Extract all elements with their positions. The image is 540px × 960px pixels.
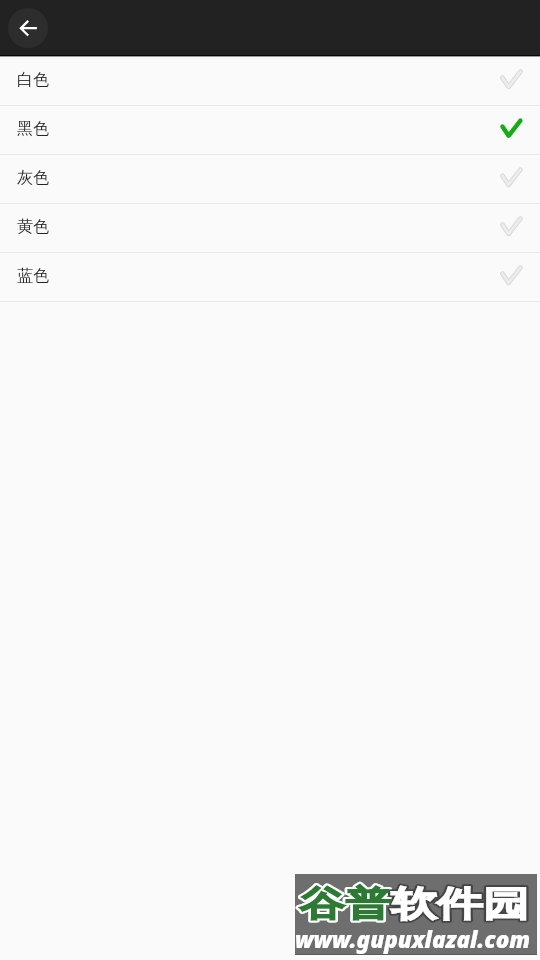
button[interactable]: 黄色 [0, 205, 540, 254]
staticText: 灰色 [17, 167, 50, 187]
button[interactable]: 黑色 [0, 107, 540, 156]
button[interactable]: Back [8, 8, 48, 48]
staticText: 蓝色 [17, 265, 50, 285]
button[interactable]: 灰色 [0, 156, 540, 205]
staticText: 黑色 [17, 118, 50, 138]
button[interactable]: 白色 [0, 58, 540, 107]
button[interactable]: 蓝色 [0, 254, 540, 303]
staticText: 谷普软件园 [299, 883, 529, 927]
staticText: 白色 [17, 69, 50, 89]
staticText: 谷普软件园 [299, 883, 529, 927]
staticText: 黄色 [17, 216, 50, 236]
staticText: www.gupuxlazal.com [295, 924, 531, 955]
